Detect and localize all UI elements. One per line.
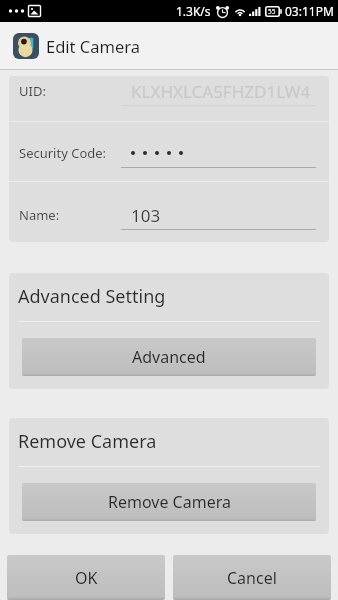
- staticText: UID:: [19, 82, 46, 100]
- staticText: Remove Camera: [108, 491, 231, 513]
- staticText: 03:11PM: [285, 3, 334, 19]
- staticText: KLXHXLCA5FHZD1LW4: [131, 80, 311, 103]
- staticText: 103: [131, 204, 161, 227]
- staticText: 1.3K/s: [176, 3, 211, 19]
- staticText: Name:: [19, 206, 60, 224]
- button[interactable]: Remove Camera: [22, 483, 316, 521]
- staticText: Remove Camera: [18, 429, 157, 454]
- staticText: Edit Camera: [46, 35, 140, 57]
- staticText: OK: [75, 567, 98, 589]
- staticText: Cancel: [227, 567, 277, 589]
- staticText: Advanced Setting: [18, 284, 166, 309]
- button[interactable]: Security Code:: [9, 122, 329, 181]
- button[interactable]: OK: [7, 555, 165, 600]
- button[interactable]: Name:: [9, 182, 329, 242]
- button[interactable]: Edit Camera: [0, 22, 338, 69]
- button[interactable]: Cancel: [173, 555, 331, 600]
- staticText: Security Code:: [19, 144, 107, 162]
- button[interactable]: Advanced: [22, 338, 316, 376]
- staticText: 55: [268, 7, 276, 16]
- button[interactable]: UID:: [9, 76, 329, 121]
- staticText: Advanced: [132, 346, 206, 368]
